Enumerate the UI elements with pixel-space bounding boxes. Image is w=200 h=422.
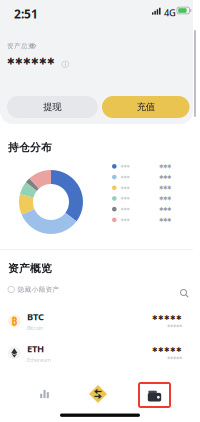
staticText: 4G — [164, 6, 176, 19]
button[interactable]: 提现 — [7, 96, 98, 118]
staticText: 资产总览 — [7, 42, 35, 50]
staticText: Bitcoin — [27, 324, 43, 332]
button[interactable]: ₿ — [0, 306, 192, 336]
staticText: ✱✱✱ — [159, 185, 171, 191]
button[interactable]: 隐藏小额资产 — [8, 285, 88, 294]
staticText: ✱✱✱ — [159, 195, 171, 201]
staticText: ✱✱✱ — [121, 218, 130, 222]
staticText: ✱✱✱✱✱ — [167, 356, 182, 360]
staticText: ✱✱✱ — [121, 196, 130, 201]
staticText: 2:51 — [14, 6, 38, 22]
button[interactable]: Swap — [88, 384, 108, 404]
button[interactable]: 充值 — [102, 96, 189, 118]
staticText: ✱✱✱ — [159, 206, 171, 212]
button[interactable]: Markets — [30, 382, 59, 406]
staticText: ✱✱✱ — [121, 164, 130, 169]
staticText: ✱✱✱✱✱ — [167, 324, 182, 328]
button[interactable]: ETH — [0, 338, 192, 368]
staticText: ETH — [27, 342, 44, 355]
staticText: ₿ — [11, 314, 17, 328]
staticText: 隐藏小额资产 — [17, 285, 59, 294]
staticText: ✱✱✱✱✱✱ — [7, 56, 55, 67]
staticText: 资产概览 — [8, 262, 52, 275]
staticText: ✱✱✱ — [159, 163, 171, 169]
staticText: ✱✱✱✱✱ — [152, 314, 182, 321]
staticText: BTC — [27, 310, 44, 323]
button[interactable]: Wallet — [139, 383, 170, 407]
staticText: ✱✱✱ — [121, 207, 130, 211]
staticText: 提现 — [43, 101, 61, 113]
staticText: ✱✱✱✱✱ — [152, 346, 182, 353]
staticText: ✱✱✱ — [159, 174, 171, 180]
staticText: ✱✱✱ — [121, 185, 130, 190]
staticText: 持仓分布 — [8, 141, 52, 154]
staticText: ✱✱✱ — [159, 217, 171, 223]
staticText: 充值 — [137, 101, 155, 113]
button[interactable]: Search — [180, 289, 189, 298]
staticText: Ethereum — [27, 356, 51, 364]
staticText: ✱✱✱ — [121, 175, 130, 179]
staticText: i — [65, 61, 66, 68]
